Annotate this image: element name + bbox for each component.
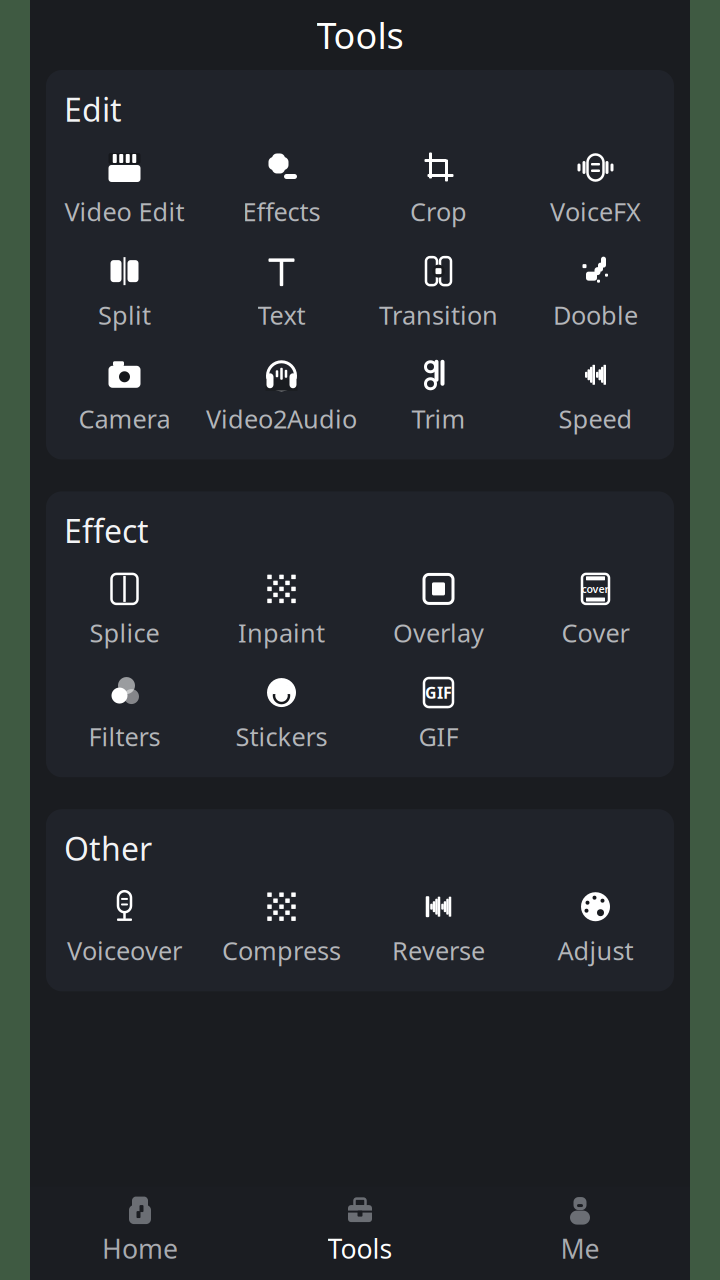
button[interactable]: Tools	[250, 1197, 470, 1266]
staticText: VoiceFX	[550, 194, 641, 228]
button[interactable]: Home	[30, 1197, 250, 1266]
staticText: Compress	[222, 934, 341, 967]
staticText: Overlay	[393, 616, 484, 649]
staticText: Splice	[89, 616, 159, 649]
staticText: Split	[98, 298, 151, 332]
button[interactable]: Crop	[360, 144, 517, 234]
staticText: Camera	[78, 402, 170, 435]
button[interactable]: Reverse	[360, 884, 517, 973]
button[interactable]: Overlay	[360, 566, 517, 655]
button[interactable]: Me	[470, 1197, 690, 1266]
button[interactable]: cover	[517, 566, 674, 655]
staticText: Other	[64, 827, 152, 870]
staticText: Effect	[64, 509, 149, 552]
button[interactable]: VoiceFX	[517, 144, 674, 234]
button[interactable]: GIF	[360, 670, 517, 759]
staticText: Text	[257, 298, 305, 332]
staticText: Voiceover	[67, 934, 182, 967]
button[interactable]: Effects	[203, 144, 360, 234]
button[interactable]: Video2Audio	[203, 352, 360, 441]
staticText: Me	[560, 1231, 599, 1266]
staticText: Crop	[410, 194, 467, 228]
button[interactable]: Splice	[46, 566, 203, 655]
staticText: Filters	[88, 720, 160, 753]
staticText: Edit	[64, 88, 122, 130]
staticText: Tools	[327, 1231, 392, 1266]
button[interactable]: Camera	[46, 352, 203, 441]
staticText: Inpaint	[238, 616, 325, 649]
button[interactable]: Trim	[360, 352, 517, 441]
button[interactable]: Adjust	[517, 884, 674, 973]
staticText: Speed	[558, 402, 632, 435]
button[interactable]: Inpaint	[203, 566, 360, 655]
button[interactable]: Video Edit	[46, 144, 203, 234]
button[interactable]: Text	[203, 248, 360, 338]
button[interactable]: Stickers	[203, 670, 360, 759]
staticText: Trim	[411, 402, 465, 435]
staticText: Effects	[242, 194, 320, 228]
staticText: GIF	[418, 720, 458, 753]
staticText: Reverse	[392, 934, 485, 967]
staticText: Tools	[316, 11, 403, 59]
staticText: Stickers	[235, 720, 327, 753]
button[interactable]: Compress	[203, 884, 360, 973]
staticText: Transition	[379, 298, 498, 332]
staticText: Home	[102, 1231, 178, 1266]
button[interactable]: Speed	[517, 352, 674, 441]
staticText: Video2Audio	[206, 402, 357, 435]
staticText: Adjust	[557, 934, 633, 967]
button[interactable]: Filters	[46, 670, 203, 759]
button[interactable]: Split	[46, 248, 203, 338]
staticText: Video Edit	[64, 194, 184, 228]
staticText: GIF	[425, 682, 452, 703]
staticText: Dooble	[553, 298, 638, 332]
button[interactable]: Voiceover	[46, 884, 203, 973]
staticText: cover	[581, 582, 609, 596]
button[interactable]: Transition	[360, 248, 517, 338]
staticText: Cover	[561, 616, 629, 649]
button[interactable]: Dooble	[517, 248, 674, 338]
